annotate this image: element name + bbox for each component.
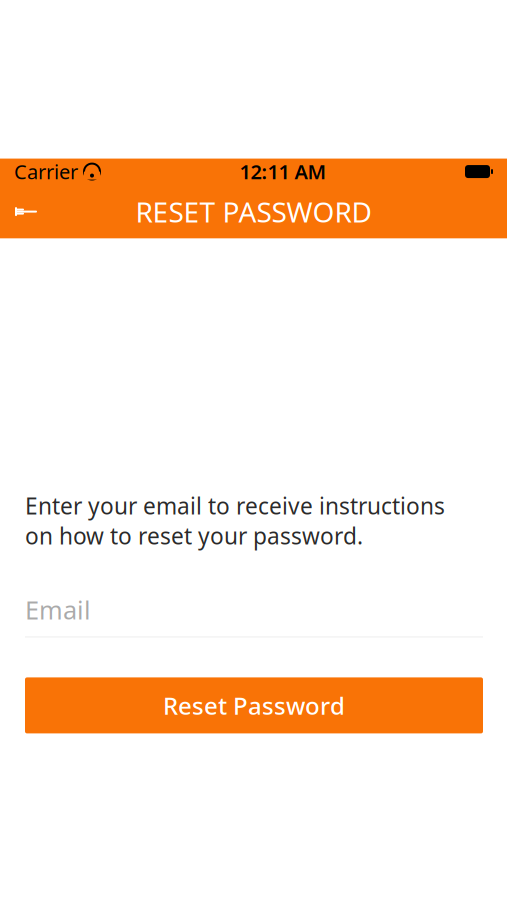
staticText: RESET PASSWORD bbox=[135, 193, 371, 230]
staticText: Enter your email to receive instructions… bbox=[25, 491, 445, 551]
staticText: 12:11 AM bbox=[239, 158, 326, 185]
staticText: Carrier bbox=[14, 158, 78, 185]
button[interactable]: Reset Password bbox=[25, 677, 483, 733]
staticText: Reset Password bbox=[163, 689, 345, 721]
button[interactable]: Back bbox=[0, 188, 52, 236]
staticText: Email bbox=[25, 593, 91, 626]
